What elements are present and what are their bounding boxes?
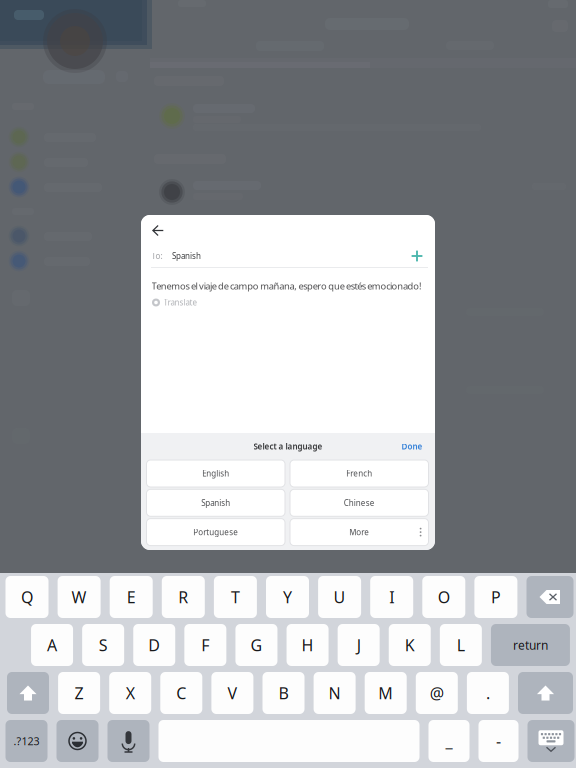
- button[interactable]: D: [133, 624, 175, 666]
- button[interactable]: Translate: [152, 294, 262, 310]
- staticText: E: [127, 586, 136, 608]
- button[interactable]: W: [58, 576, 101, 618]
- button[interactable]: M: [365, 672, 407, 714]
- staticText: G: [250, 634, 262, 656]
- staticText: More: [349, 527, 369, 537]
- button[interactable]: I: [370, 576, 413, 618]
- button[interactable]: [7, 672, 49, 714]
- staticText: D: [148, 634, 160, 656]
- button[interactable]: Add language: [404, 244, 430, 268]
- button[interactable]: English: [146, 460, 285, 487]
- staticText: S: [99, 634, 108, 656]
- button[interactable]: K: [389, 624, 431, 666]
- staticText: A: [47, 634, 57, 656]
- button[interactable]: L: [440, 624, 482, 666]
- staticText: return: [513, 637, 548, 653]
- button[interactable]: B: [262, 672, 304, 714]
- button[interactable]: U: [318, 576, 361, 618]
- staticText: H: [302, 634, 314, 656]
- button[interactable]: X: [109, 672, 151, 714]
- button[interactable]: P: [474, 576, 517, 618]
- staticText: Y: [283, 586, 292, 608]
- staticText: _: [445, 730, 452, 752]
- button[interactable]: [527, 720, 574, 762]
- staticText: V: [227, 682, 237, 704]
- button[interactable]: A: [31, 624, 73, 666]
- button[interactable]: Chinese: [290, 489, 428, 516]
- button[interactable]: R: [162, 576, 205, 618]
- button[interactable]: Y: [266, 576, 309, 618]
- button[interactable]: Back: [142, 215, 174, 245]
- staticText: N: [329, 682, 341, 704]
- staticText: L: [457, 634, 465, 656]
- button[interactable]: C: [160, 672, 202, 714]
- button[interactable]: [518, 672, 573, 714]
- staticText: Spanish: [201, 497, 230, 508]
- button[interactable]: French: [290, 460, 428, 487]
- button[interactable]: G: [235, 624, 277, 666]
- button[interactable]: .?123: [5, 720, 47, 762]
- button[interactable]: -: [478, 720, 518, 762]
- button[interactable]: T: [214, 576, 257, 618]
- button[interactable]: V: [211, 672, 253, 714]
- staticText: Tenemos el viaje de campo mañana, espero…: [151, 280, 422, 292]
- button[interactable]: Q: [5, 576, 48, 618]
- staticText: K: [405, 634, 415, 656]
- staticText: Translate: [163, 297, 197, 308]
- staticText: Spanish: [172, 251, 201, 261]
- button[interactable]: J: [338, 624, 380, 666]
- staticText: B: [278, 682, 288, 704]
- staticText: I: [389, 586, 394, 608]
- button[interactable]: O: [422, 576, 465, 618]
- staticText: .: [486, 682, 490, 704]
- button[interactable]: @: [416, 672, 458, 714]
- staticText: X: [126, 682, 135, 704]
- staticText: C: [176, 682, 186, 704]
- staticText: F: [201, 634, 209, 656]
- button[interactable]: Done: [382, 437, 422, 455]
- button[interactable]: [56, 720, 98, 762]
- staticText: To:: [151, 251, 162, 261]
- staticText: French: [346, 468, 372, 479]
- staticText: T: [231, 586, 240, 608]
- staticText: Z: [75, 682, 84, 704]
- button[interactable]: Spanish: [146, 489, 285, 516]
- staticText: W: [72, 586, 87, 608]
- button[interactable]: S: [82, 624, 124, 666]
- button[interactable]: N: [314, 672, 356, 714]
- staticText: -: [496, 730, 501, 752]
- staticText: O: [438, 586, 450, 608]
- staticText: Done: [401, 441, 422, 452]
- button[interactable]: F: [184, 624, 226, 666]
- button[interactable]: _: [428, 720, 469, 762]
- staticText: .?123: [13, 734, 39, 748]
- button[interactable]: return: [491, 624, 570, 666]
- staticText: Portuguese: [193, 527, 238, 537]
- button[interactable]: More: [290, 519, 428, 546]
- button[interactable]: H: [287, 624, 329, 666]
- staticText: R: [178, 586, 188, 608]
- staticText: M: [378, 682, 393, 704]
- button[interactable]: [526, 576, 573, 618]
- staticText: U: [334, 586, 346, 608]
- button[interactable]: Portuguese: [146, 519, 285, 546]
- button[interactable]: Z: [58, 672, 100, 714]
- staticText: Q: [21, 586, 33, 608]
- staticText: P: [491, 586, 501, 608]
- staticText: English: [202, 468, 229, 479]
- button[interactable]: .: [467, 672, 509, 714]
- staticText: Select a language: [253, 441, 322, 452]
- staticText: J: [357, 634, 361, 656]
- button[interactable]: [107, 720, 149, 762]
- button[interactable]: E: [110, 576, 153, 618]
- staticText: @: [430, 682, 444, 704]
- staticText: Chinese: [344, 497, 375, 508]
